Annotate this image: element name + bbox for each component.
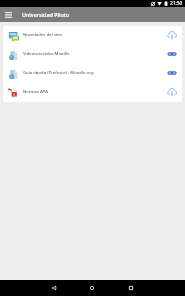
button[interactable]: Normas APA [3, 83, 182, 102]
button[interactable]: Videotutoriales Moodle [3, 45, 182, 64]
button[interactable]: Open navigation menu [0, 7, 16, 22]
staticText: Videotutoriales Moodle [23, 51, 167, 57]
button[interactable]: Guía rápida (Profesor) - Moodle.org [3, 64, 182, 83]
staticText: Normas APA [23, 89, 167, 95]
button[interactable]: Back [40, 280, 68, 296]
staticText: 21:50 [170, 0, 183, 7]
staticText: Novedades del sitio [23, 32, 167, 38]
button[interactable]: Recent apps [117, 280, 145, 296]
staticText: Guía rápida (Profesor) - Moodle.org [23, 70, 167, 76]
staticText: Universidad Piloto [22, 11, 70, 18]
button[interactable]: Novedades del sitio [3, 26, 182, 45]
button[interactable]: Home [78, 280, 106, 296]
